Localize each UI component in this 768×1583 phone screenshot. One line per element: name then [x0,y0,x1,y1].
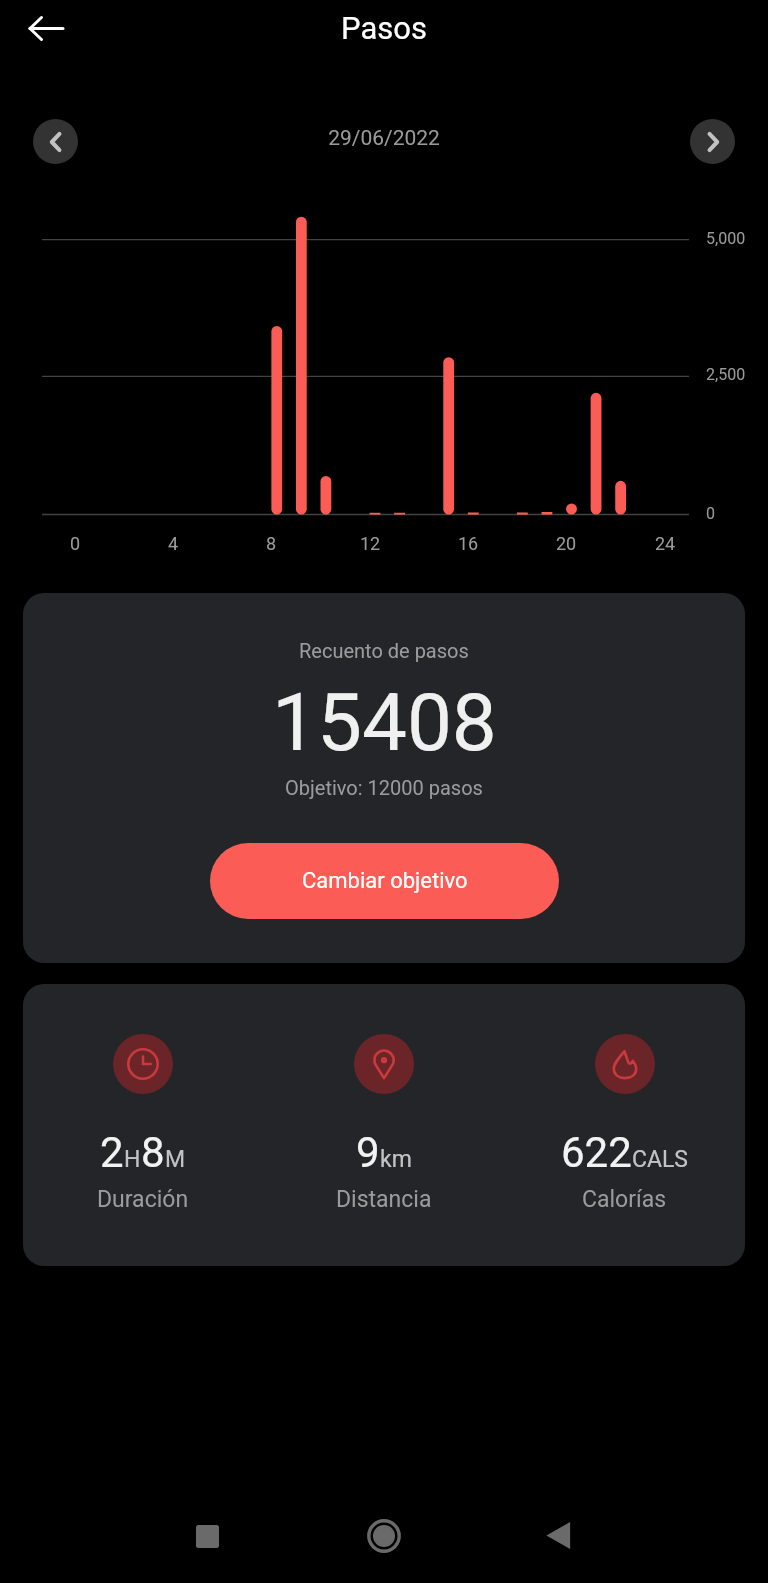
staticText: 2,500 [706,365,746,384]
staticText: 2 [100,1128,124,1177]
staticText: 622 [561,1128,632,1177]
staticText: 15408 [272,676,497,770]
staticText: Pasos [341,10,427,46]
staticText: Distancia [336,1186,432,1213]
staticText: 24 [655,533,676,554]
staticText: 0 [70,533,81,554]
staticText: M [165,1146,186,1173]
staticText: 5,000 [706,229,746,248]
staticText: 0 [706,504,715,523]
staticText: 16 [458,533,479,554]
button[interactable]: Back [522,1511,594,1559]
staticText: Recuento de pasos [299,639,469,662]
staticText: Cambiar objetivo [302,868,468,894]
staticText: CALS [632,1146,689,1173]
staticText: 8 [266,533,277,554]
staticText: 9 [356,1128,380,1177]
button[interactable]: Home [348,1512,420,1560]
button[interactable]: Next day [690,119,735,164]
staticText: 20 [556,533,577,554]
staticText: 12 [360,533,381,554]
staticText: Duración [97,1186,189,1213]
staticText: 4 [168,533,179,554]
button[interactable]: Back [22,4,70,52]
button[interactable]: Cambiar objetivo [210,843,559,919]
staticText: km [380,1146,412,1173]
button[interactable]: Previous day [33,119,78,164]
staticText: 8 [141,1128,165,1177]
staticText: Calorías [582,1186,667,1213]
button[interactable]: Recent apps [171,1512,243,1560]
staticText: 29/06/2022 [328,126,440,151]
staticText: Objetivo: 12000 pasos [285,776,483,799]
staticText: H [124,1146,141,1173]
